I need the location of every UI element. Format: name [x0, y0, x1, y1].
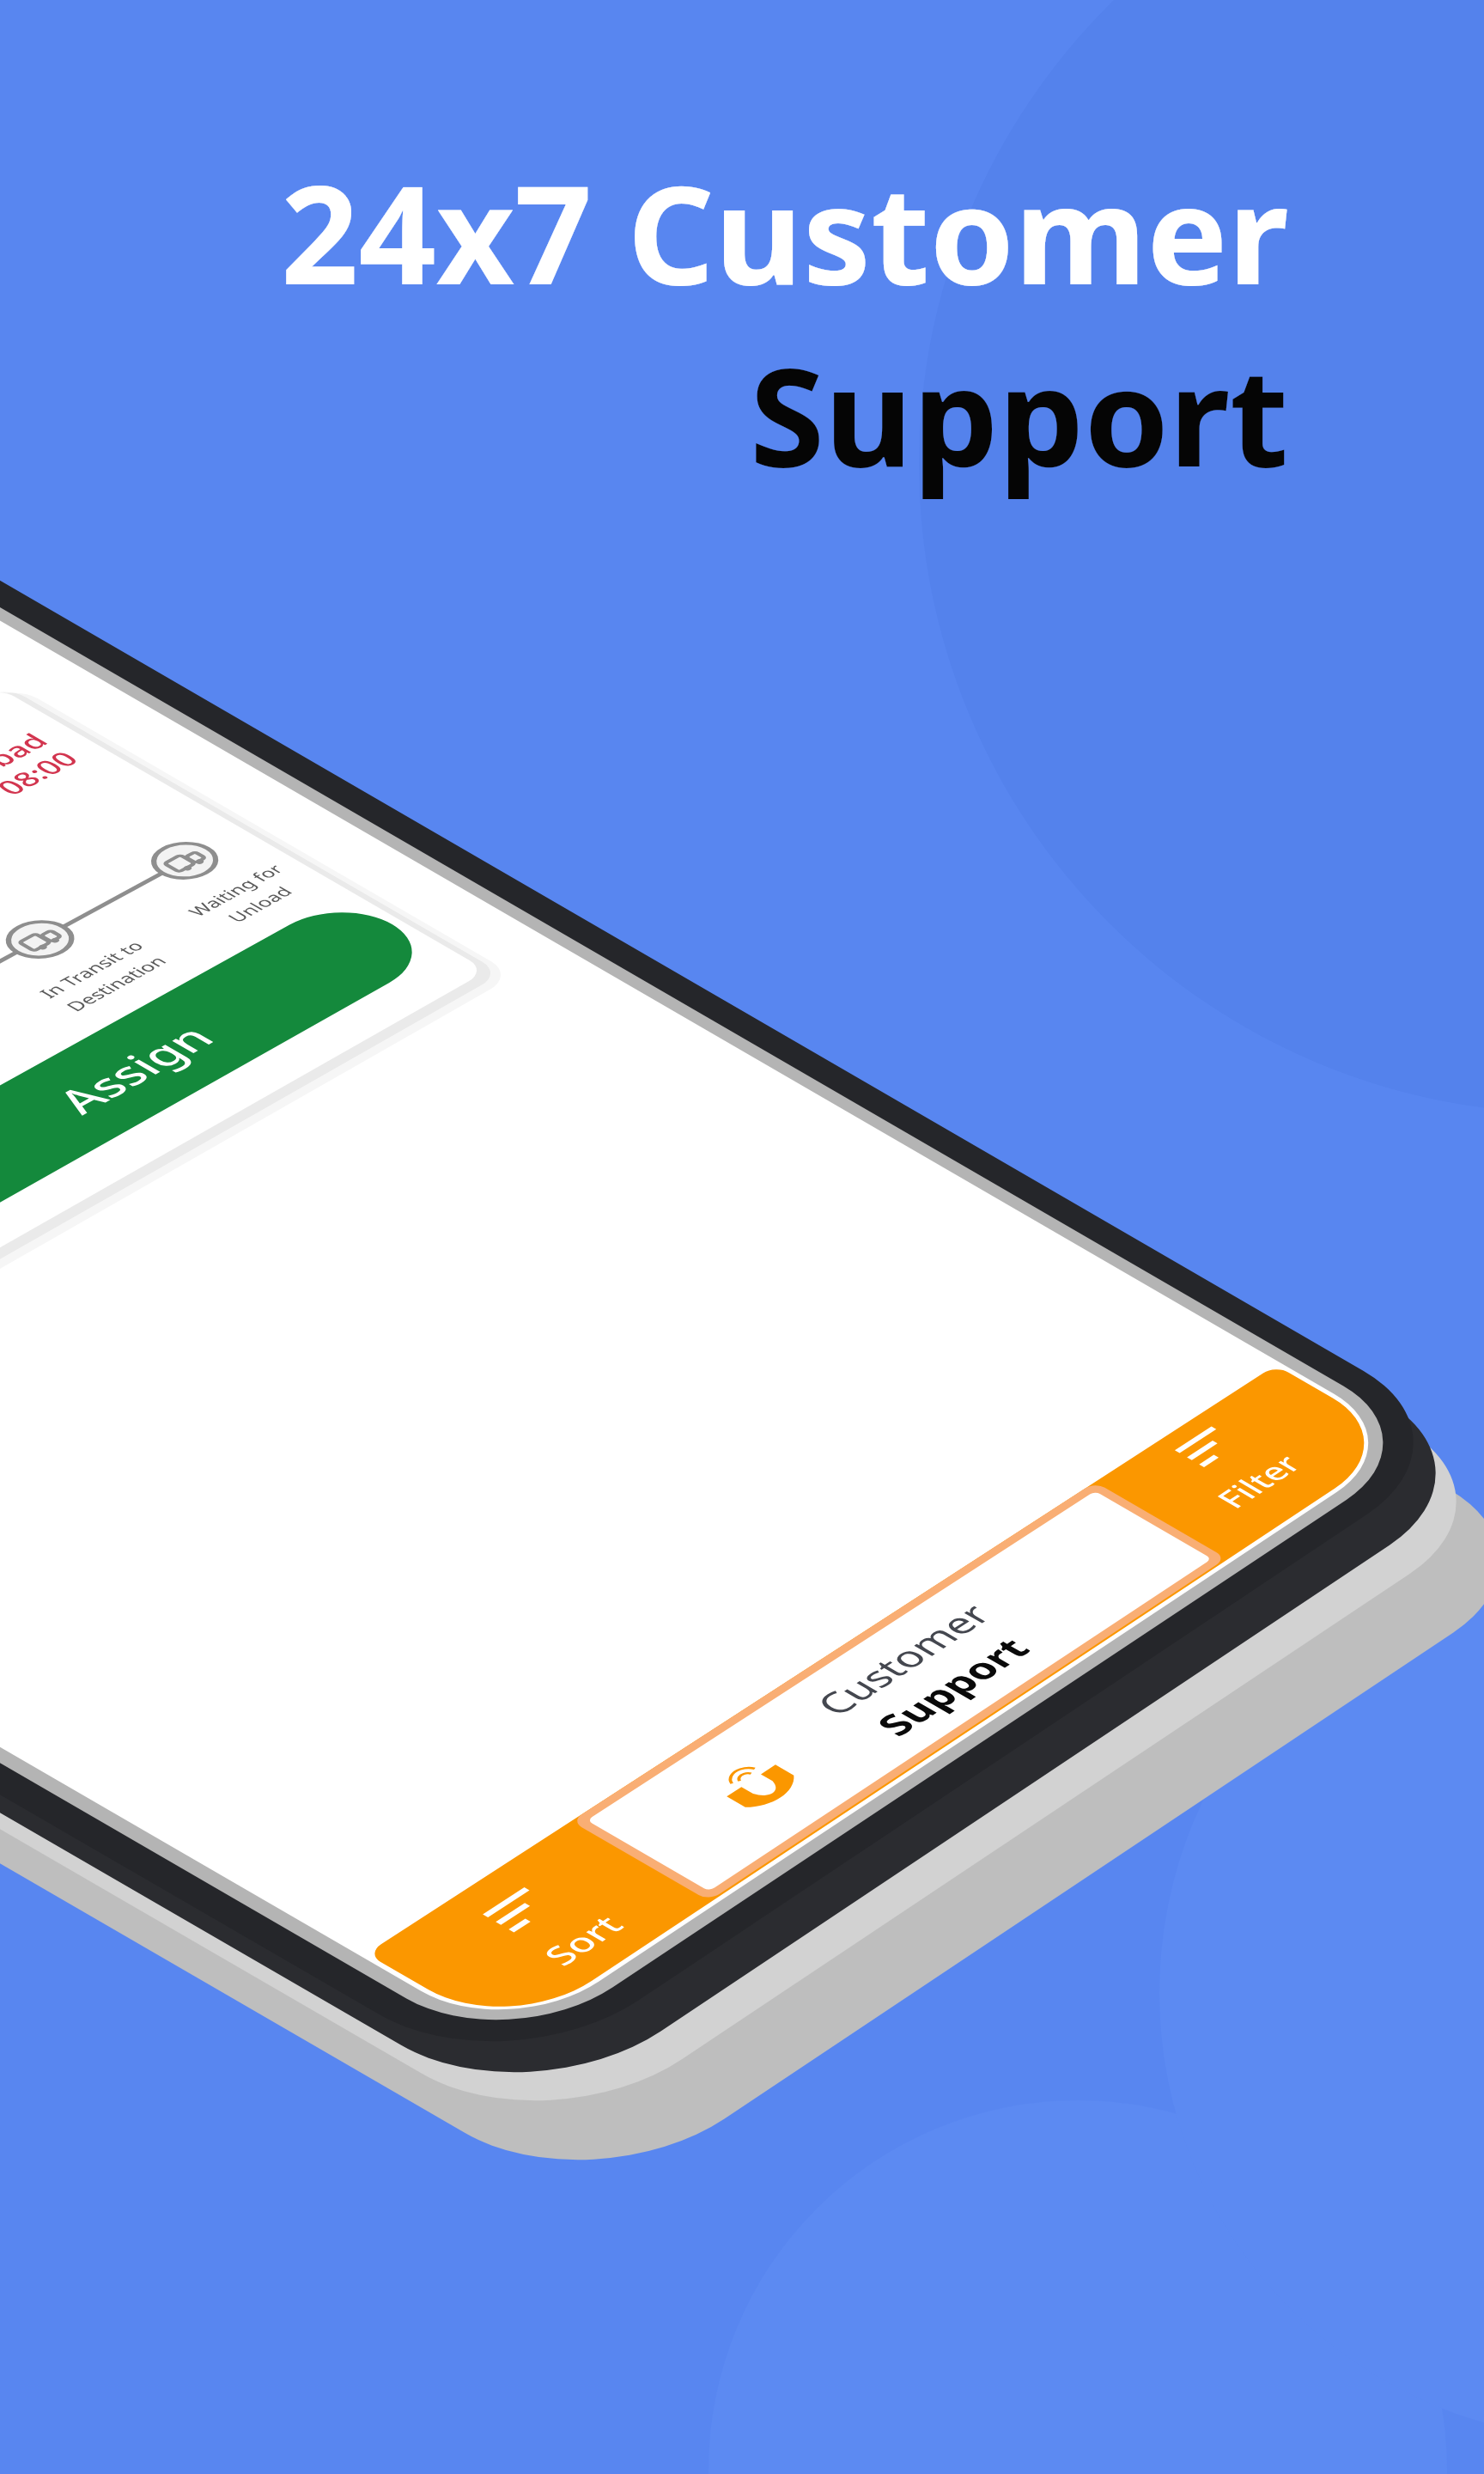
button[interactable]: Filter [1095, 1365, 1407, 1559]
button[interactable]: Sort [367, 1821, 711, 2036]
staticText: Support [750, 321, 1289, 506]
staticText: 24x7 Customer [281, 139, 1289, 324]
button[interactable]: Customer Support [571, 1482, 1228, 1902]
button[interactable]: Assign [0, 900, 432, 1388]
